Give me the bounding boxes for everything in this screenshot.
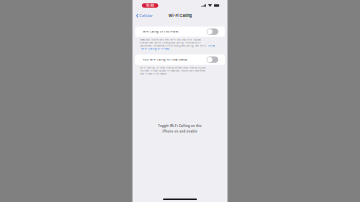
button[interactable]: Wi-Fi Calling on This iPhone: [135, 26, 225, 37]
staticText: iPhone on and enable: [162, 130, 197, 133]
staticText: 10:48: [146, 3, 154, 7]
button[interactable]: Add Wi-Fi Calling For Other Devices: [135, 54, 225, 65]
staticText: About: [208, 44, 215, 47]
staticText: Toggle Wi-Fi Calling on this: [158, 124, 202, 128]
staticText: your iPhone is not nearby.: [140, 72, 167, 75]
staticText: Add Wi-Fi Calling For Other Devices: [143, 58, 187, 61]
staticText: Make and receive calls over Wi-Fi and yo…: [140, 38, 202, 41]
staticText: Wi-Fi calling for other devices allows o…: [140, 66, 206, 69]
staticText: Wi-Fi Calling & Privacy.: [141, 47, 170, 50]
staticText: Cellular: [139, 14, 152, 18]
staticText: understand the availability of emergency…: [140, 44, 207, 47]
staticText: into your iCloud account to make and rec…: [140, 69, 205, 72]
staticText: Wi-Fi Calling on This iPhone: [143, 30, 178, 33]
button[interactable]: Cellular: [132, 11, 155, 20]
staticText: Wi-Fi Calling: [168, 13, 191, 18]
staticText: Review your carrier's emergency calling …: [140, 41, 200, 44]
